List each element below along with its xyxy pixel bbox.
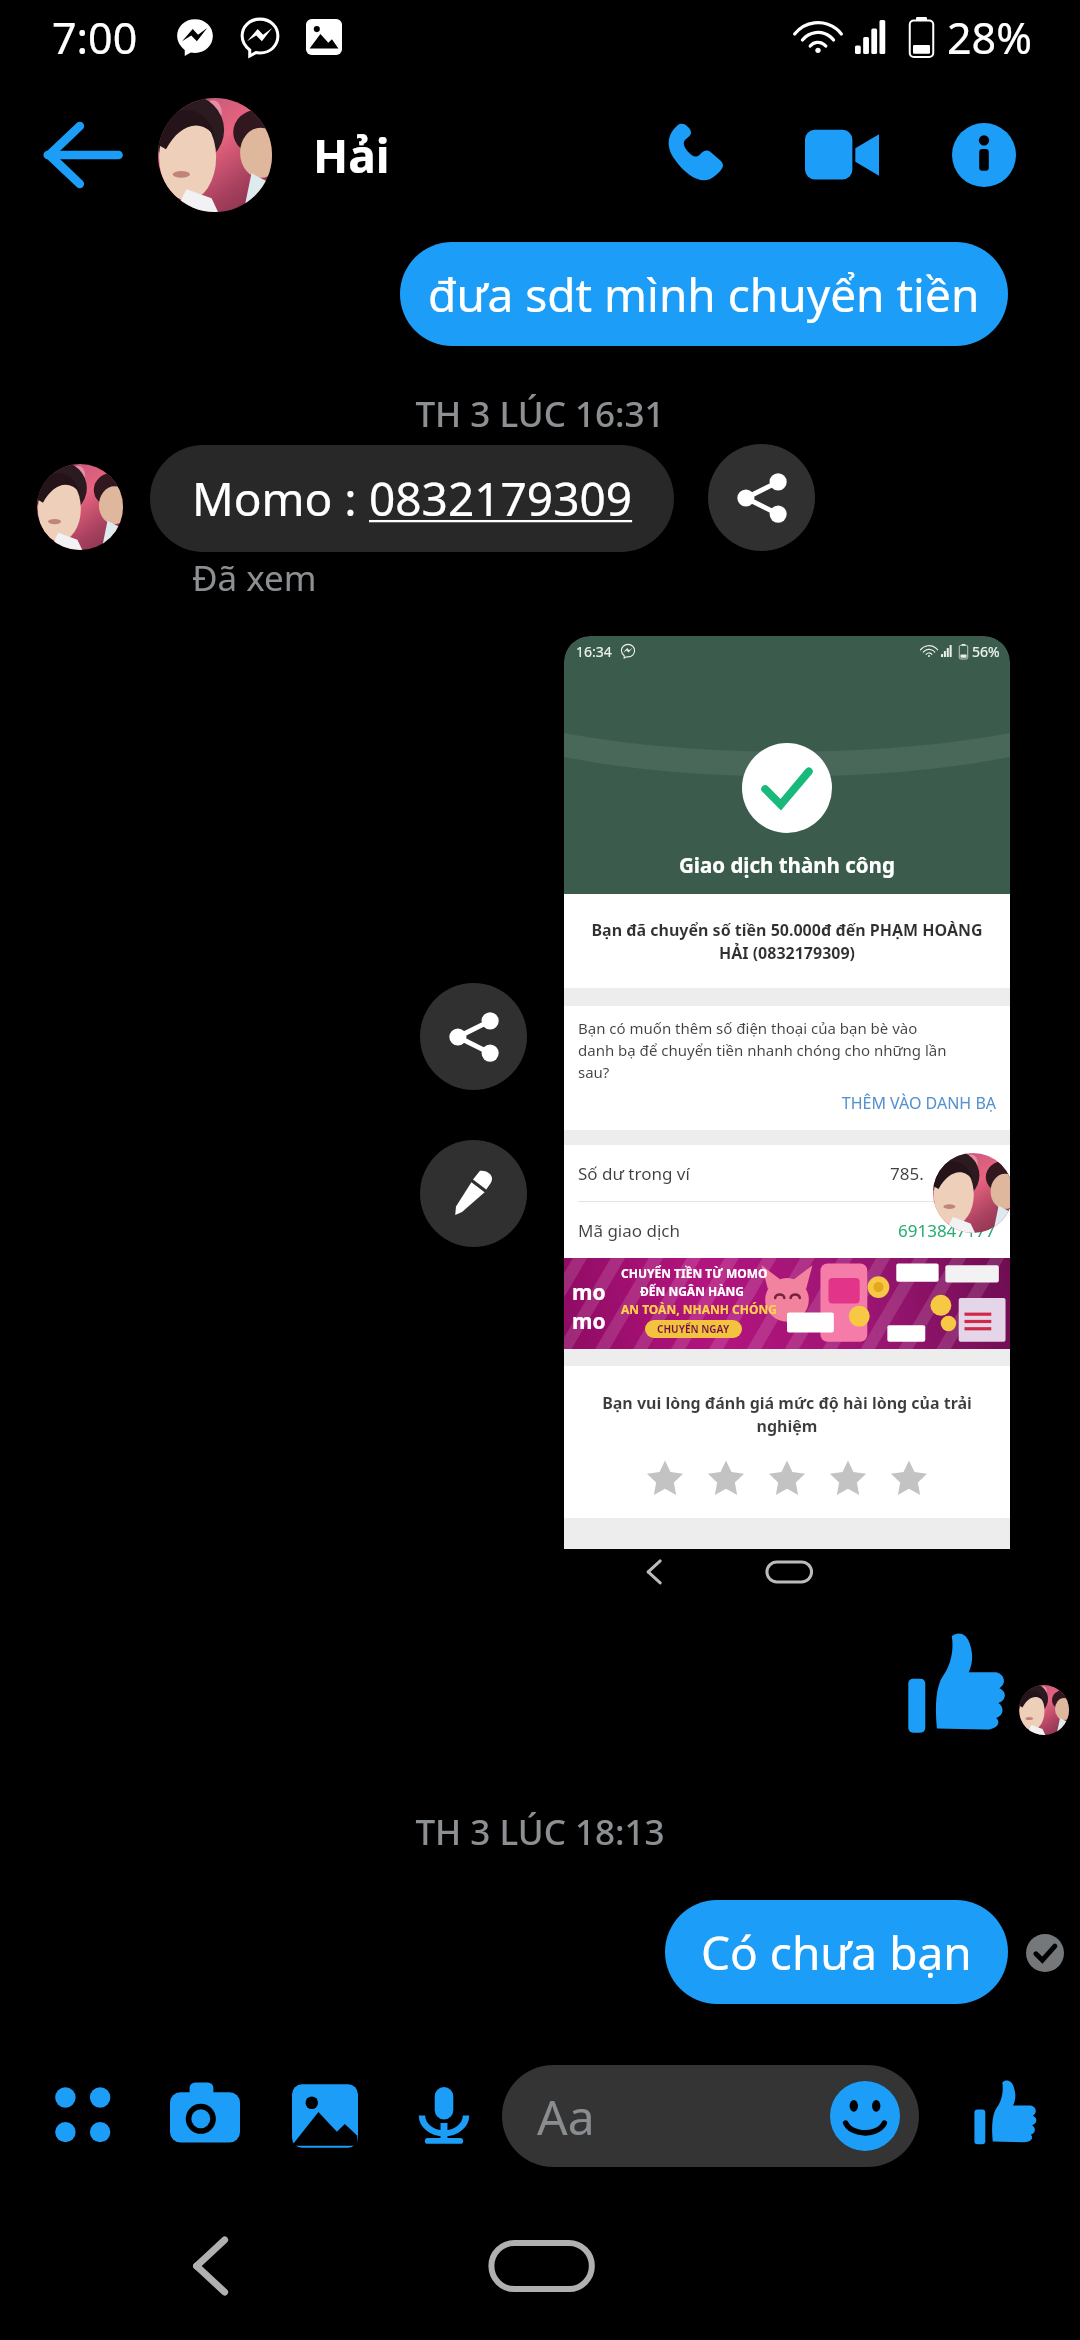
staticText: mo	[572, 1278, 606, 1307]
staticText: TH 3 LÚC 18:13	[0, 1808, 1080, 1856]
button[interactable]: Aa	[502, 2065, 919, 2167]
button[interactable]: Conversation information	[929, 96, 1039, 214]
staticText: Bạn vui lòng đánh giá mức độ hài lòng củ…	[570, 1392, 1004, 1437]
staticText: Mã giao dịch	[578, 1219, 680, 1242]
staticText: 785.	[890, 1162, 924, 1185]
staticText: Có chưa bạn	[701, 1921, 972, 1984]
staticText: TH 3 LÚC 16:31	[0, 390, 1080, 438]
staticText: Bạn đã chuyển số tiền 50.000đ đến PHẠM H…	[570, 919, 1004, 964]
button[interactable]: Hải	[158, 96, 628, 214]
button[interactable]: Voice message	[386, 2058, 502, 2174]
staticText: 28%	[947, 8, 1032, 67]
staticText: Aa	[537, 2084, 595, 2149]
staticText: Giao dịch thành công	[679, 851, 895, 879]
button[interactable]: More options	[26, 2058, 142, 2174]
staticText: ĐẾN NGÂN HÀNG	[640, 1283, 744, 1299]
staticText: Momo :	[192, 467, 369, 530]
staticText: 6913847177	[898, 1219, 996, 1242]
staticText: 16:34	[576, 642, 612, 661]
staticText: Hải	[313, 124, 390, 187]
button[interactable]: Có chưa bạn	[665, 1900, 1008, 2004]
staticText: CHUYỂN NGAY	[657, 1322, 730, 1336]
staticText: CHUYỂN TIỀN TỪ MOMO	[621, 1265, 768, 1281]
button[interactable]: Video call	[787, 96, 897, 214]
staticText: 0832179309	[369, 467, 633, 530]
button[interactable]: Edit	[420, 1140, 527, 1247]
button[interactable]: Back	[22, 96, 146, 214]
button[interactable]: Send like	[950, 2058, 1060, 2168]
staticText: THÊM VÀO DANH BẠ	[578, 1092, 996, 1114]
button[interactable]: 16:34	[564, 636, 1010, 1600]
button[interactable]: Share	[708, 444, 815, 551]
button[interactable]: Momo :	[150, 445, 674, 552]
staticText: đưa sdt mình chuyển tiền	[428, 263, 980, 326]
button[interactable]: Share	[420, 983, 527, 1090]
button[interactable]: Gallery	[267, 2058, 383, 2174]
staticText: AN TOÀN, NHANH CHÓNG	[621, 1301, 777, 1317]
button[interactable]: Camera	[147, 2058, 263, 2174]
staticText: 56%	[972, 642, 1000, 661]
staticText: Số dư trong ví	[578, 1162, 690, 1185]
button[interactable]: Voice call	[640, 96, 750, 214]
staticText: Đã xem	[192, 554, 317, 602]
staticText: 7:00	[52, 8, 138, 67]
button[interactable]: đưa sdt mình chuyển tiền	[400, 242, 1008, 346]
staticText: mo	[572, 1307, 606, 1336]
staticText: Bạn có muốn thêm số điện thoại của bạn b…	[578, 1018, 996, 1083]
